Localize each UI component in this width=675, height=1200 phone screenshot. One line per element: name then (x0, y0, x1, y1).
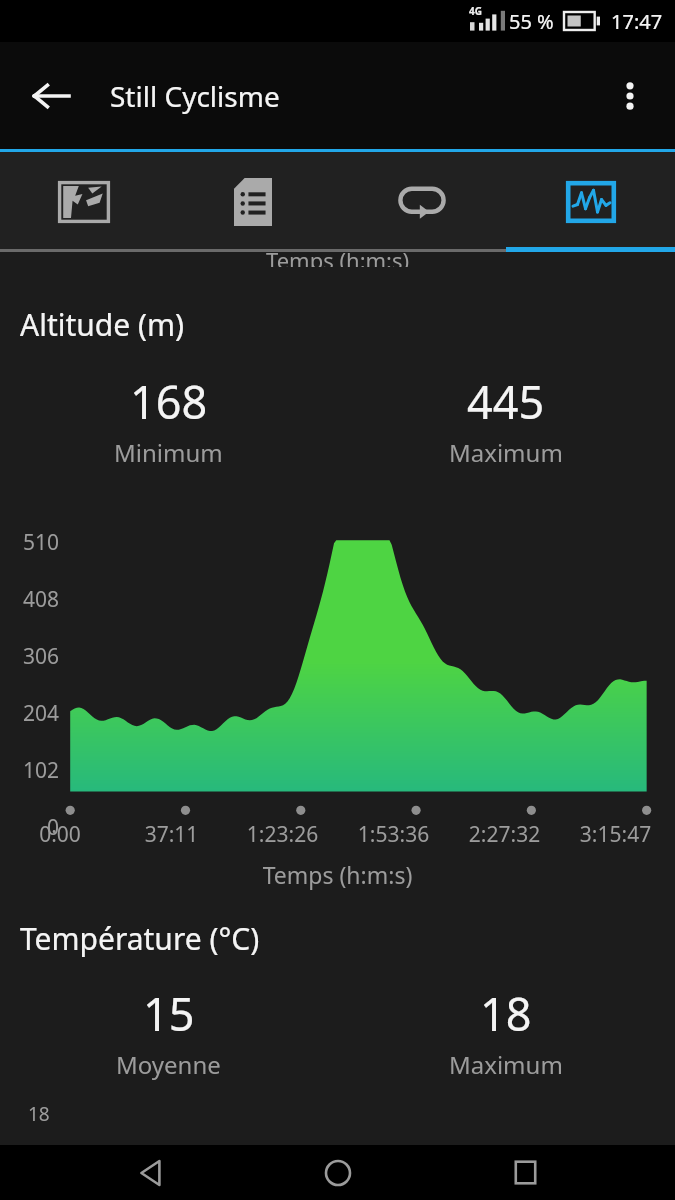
staticText: Altitude (m) (20, 304, 185, 345)
staticText: 306 (1, 642, 59, 671)
staticText: 18 (480, 983, 532, 1044)
staticText: Maximum (449, 1048, 563, 1081)
staticText: Temps (h:m:s) (0, 859, 675, 890)
staticText: Moyenne (116, 1048, 221, 1081)
staticText: Minimum (114, 436, 223, 469)
staticText: 408 (1, 585, 59, 614)
staticText: 15 (143, 983, 195, 1044)
staticText: 17:47 (611, 8, 663, 35)
button[interactable]: Recents (488, 1145, 562, 1200)
staticText: Température (°C) (20, 918, 260, 959)
staticText: 4G (469, 4, 482, 18)
staticText: 445 (467, 371, 545, 432)
staticText: Maximum (449, 436, 563, 469)
button[interactable]: Charts (506, 152, 675, 252)
staticText: 510 (1, 528, 59, 557)
staticText: 0 (1, 813, 59, 842)
staticText: 204 (1, 699, 59, 728)
staticText: 168 (130, 371, 208, 432)
staticText: 1:53:36 (338, 820, 449, 849)
button[interactable]: More options (599, 65, 661, 127)
staticText: 2:27:32 (449, 820, 560, 849)
staticText: 0:00 (4, 820, 116, 849)
staticText: 3:15:47 (560, 820, 671, 849)
staticText: 37:11 (116, 820, 227, 849)
staticText: 102 (1, 756, 59, 785)
staticText: 55 % (509, 8, 554, 35)
button[interactable]: Map (0, 152, 168, 252)
button[interactable]: Back (16, 61, 86, 131)
staticText: Still Cyclisme (110, 77, 280, 115)
staticText: Temps (h:m:s) (266, 245, 410, 267)
button[interactable]: Laps (337, 152, 506, 252)
button[interactable]: Details (168, 152, 337, 252)
staticText: 18 (28, 1101, 50, 1127)
staticText: 1:23:26 (227, 820, 338, 849)
button[interactable]: Back (114, 1145, 188, 1200)
button[interactable]: Home (301, 1145, 375, 1200)
